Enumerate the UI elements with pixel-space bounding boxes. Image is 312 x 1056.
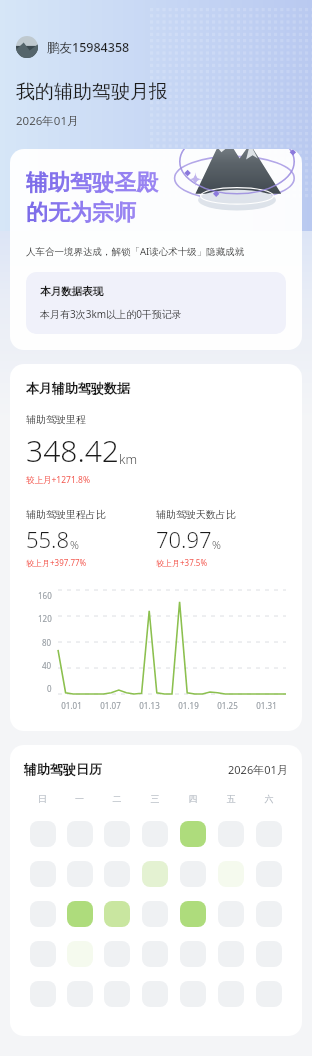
button[interactable]: 辅助驾驶日历 [10,745,302,1036]
staticText: % [212,537,221,552]
staticText: 辅助驾驶圣殿 [26,169,158,197]
button[interactable] [30,901,56,927]
staticText: 四 [174,793,212,804]
staticText: 120 [38,613,52,624]
staticText: 本月有3次3km以上的0干预记录 [40,307,182,321]
staticText: 01.25 [208,700,247,711]
staticText: 160 [38,590,52,601]
staticText: 80 [42,637,52,648]
button[interactable] [218,821,244,847]
button[interactable] [256,981,282,1007]
button[interactable] [30,821,56,847]
staticText: km [119,450,138,468]
button[interactable] [180,861,206,887]
staticText: 70.97 [156,524,212,554]
button[interactable] [67,861,93,887]
button[interactable] [67,821,93,847]
staticText: 40 [42,660,52,671]
staticText: 55.8 [26,524,70,554]
staticText: 348.42 [26,430,119,471]
staticText: 的无为宗师 [26,199,136,227]
button[interactable] [67,901,93,927]
staticText: 鹏友15984358 [47,39,130,56]
staticText: % [70,537,79,552]
button[interactable] [256,901,282,927]
button[interactable] [180,941,206,967]
staticText: 辅助驾驶里程占比 [26,508,106,521]
staticText: 01.07 [91,700,130,711]
button[interactable] [218,861,244,887]
button[interactable] [67,941,93,967]
button[interactable] [104,821,130,847]
button[interactable] [256,941,282,967]
staticText: 01.01 [52,700,91,711]
staticText: 三 [136,793,174,804]
staticText: 辅助驾驶日历 [24,761,102,777]
button[interactable] [30,861,56,887]
staticText: 本月辅助驾驶数据 [26,380,130,396]
other: User avatar [16,36,38,58]
button[interactable] [218,901,244,927]
staticText: 较上月+397.77% [26,557,87,568]
staticText: 01.19 [169,700,208,711]
button[interactable] [256,821,282,847]
button[interactable] [180,901,206,927]
staticText: 0 [47,683,52,694]
button[interactable] [104,941,130,967]
staticText: 二 [98,793,136,804]
button[interactable] [30,941,56,967]
staticText: 较上月+37.5% [156,557,208,568]
staticText: 六 [250,793,288,804]
button[interactable] [104,861,130,887]
button[interactable]: 本月辅助驾驶数据 [10,364,302,731]
staticText: 较上月+1271.8% [26,474,91,486]
button[interactable]: 辅助驾驶圣殿 [10,149,302,350]
button[interactable] [30,981,56,1007]
button[interactable] [180,981,206,1007]
button[interactable]: User avatar [16,36,130,58]
button[interactable] [218,981,244,1007]
button[interactable] [142,861,168,887]
staticText: 辅助驾驶里程 [26,413,86,426]
button[interactable] [180,821,206,847]
button[interactable] [142,941,168,967]
button[interactable] [104,901,130,927]
staticText: 本月数据表现 [40,285,103,298]
staticText: 辅助驾驶天数占比 [156,508,236,521]
button[interactable] [256,861,282,887]
staticText: 我的辅助驾驶月报 [16,80,168,104]
button[interactable] [67,981,93,1007]
staticText: 一 [61,793,98,804]
button[interactable] [142,981,168,1007]
button[interactable] [218,941,244,967]
staticText: 2026年01月 [228,762,288,777]
staticText: 2026年01月 [16,113,79,129]
button[interactable] [142,821,168,847]
button[interactable] [142,901,168,927]
staticText: 五 [212,793,250,804]
button[interactable] [104,981,130,1007]
staticText: 01.31 [247,700,286,711]
staticText: 01.13 [130,700,169,711]
staticText: 人车合一境界达成，解锁「AI读心术十级」隐藏成就 [26,245,245,258]
staticText: 日 [24,793,61,804]
